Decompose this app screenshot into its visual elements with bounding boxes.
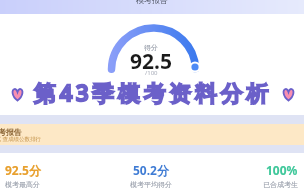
button[interactable]: 92.5分 (5, 162, 102, 189)
staticText: 已合成考生 (263, 180, 298, 189)
staticText: 考试 查成绩公数排行 (0, 135, 41, 143)
staticText: 92.5 (130, 47, 172, 76)
staticText: 100% (266, 162, 298, 178)
staticText: 第43季模考资料分析 (34, 77, 273, 107)
staticText: 模考平均得分 (130, 180, 172, 189)
staticText: 模考报告 (136, 0, 168, 5)
staticText: /100 (145, 69, 158, 77)
staticText: 92.5分 (5, 162, 41, 178)
staticText: 模考最高分 (5, 180, 40, 189)
staticText: 第43季模考资料分析 (34, 77, 273, 107)
staticText: 模考报告 (0, 127, 22, 137)
staticText: 50.2分 (133, 162, 169, 178)
button[interactable]: 100% (200, 162, 298, 189)
staticText: 得分 (144, 43, 158, 52)
button[interactable]: 50.2分 (102, 162, 200, 189)
